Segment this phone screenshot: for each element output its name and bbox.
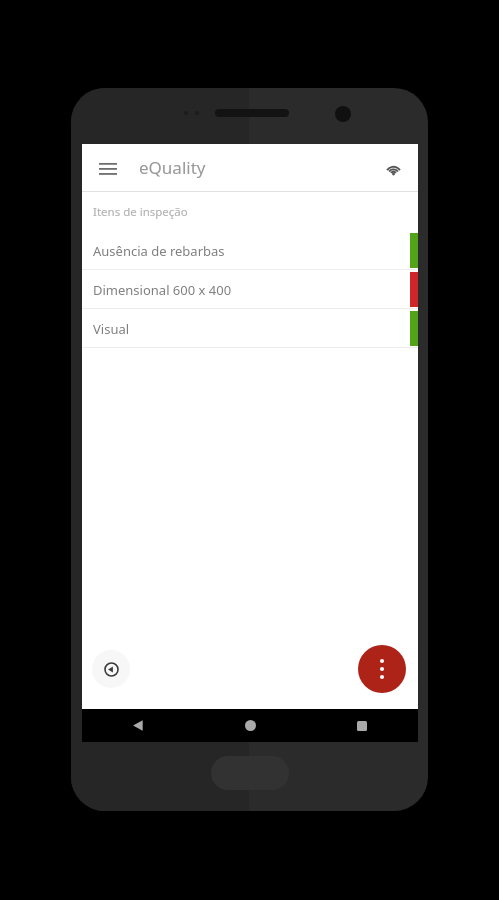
staticText: Dimensional 600 x 400 <box>93 281 232 299</box>
staticText: eQuality <box>139 156 206 179</box>
button[interactable]: More options <box>358 645 406 693</box>
button[interactable]: Visual <box>82 309 418 348</box>
staticText: Itens de inspeção <box>93 204 188 220</box>
button[interactable]: Wi-Fi status <box>376 151 410 185</box>
button[interactable]: Open navigation menu <box>90 150 126 186</box>
staticText: Ausência de rebarbas <box>93 242 225 260</box>
button[interactable]: Back <box>82 709 194 742</box>
button[interactable]: Recent apps <box>306 709 418 742</box>
button[interactable]: Ausência de rebarbas <box>82 231 418 270</box>
button[interactable]: Home <box>194 709 306 742</box>
button[interactable]: Back <box>92 650 130 688</box>
button[interactable]: Dimensional 600 x 400 <box>82 270 418 309</box>
staticText: Visual <box>93 320 130 338</box>
